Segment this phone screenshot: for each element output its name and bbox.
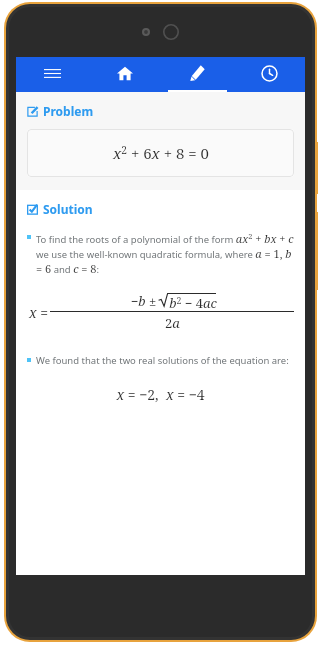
staticText: b2 − 4ac	[169, 294, 217, 312]
button[interactable]: Edit	[161, 57, 233, 89]
staticText: 2a	[165, 314, 180, 332]
staticText: We found that the two real solutions of …	[36, 354, 289, 367]
staticText: −b ±	[129, 292, 158, 310]
staticText: x =	[27, 303, 50, 322]
staticText: x = −2, x = −4	[116, 385, 205, 404]
button[interactable]: History	[233, 57, 305, 89]
button[interactable]: Home	[89, 57, 161, 89]
staticText: Problem	[43, 103, 94, 119]
staticText: x2 + 6x + 8 = 0	[113, 143, 209, 163]
staticText: Solution	[43, 201, 93, 217]
button[interactable]: Menu	[16, 57, 89, 89]
staticText: To find the roots of a polynomial of the…	[36, 231, 294, 276]
